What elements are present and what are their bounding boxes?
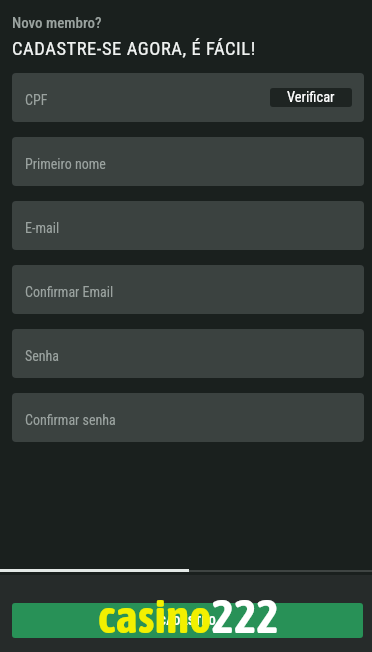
staticText: 222 [212,590,280,643]
button[interactable]: E-mail [12,201,364,250]
staticText: Confirmar senha [25,412,116,428]
button[interactable]: CADASTRO [12,603,363,638]
button[interactable]: CPF [12,73,364,122]
button[interactable]: Confirmar Email [12,265,364,314]
staticText: E-mail [25,220,60,236]
staticText: Confirmar Email [25,284,114,300]
staticText: CADASTRO [159,614,217,628]
staticText: Novo membro? [12,14,102,32]
button[interactable]: Primeiro nome [12,137,364,186]
staticText: Verificar [287,89,335,106]
staticText: CADASTRE-SE AGORA, É FÁCIL! [12,38,256,60]
staticText: CPF [25,92,48,108]
staticText: casino [98,590,212,643]
staticText: Primeiro nome [25,156,106,172]
staticText: Senha [25,348,60,364]
button[interactable]: Confirmar senha [12,393,364,442]
button[interactable]: Senha [12,329,364,378]
button[interactable]: Verificar [270,88,352,107]
